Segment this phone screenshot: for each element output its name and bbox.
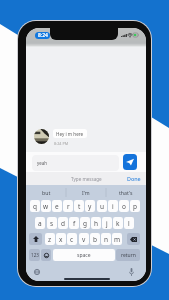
button[interactable]: Dictate xyxy=(129,268,134,276)
staticText: u xyxy=(100,202,105,211)
button[interactable]: p xyxy=(130,200,140,212)
button[interactable]: Hey i m here xyxy=(53,129,87,138)
button[interactable]: d xyxy=(58,217,68,229)
staticText: h xyxy=(94,219,99,228)
button[interactable]: k xyxy=(113,217,123,229)
staticText: j xyxy=(106,219,108,228)
button[interactable]: Change keyboard xyxy=(34,269,40,275)
button[interactable]: w xyxy=(41,200,51,212)
button[interactable]: q xyxy=(30,200,40,212)
button[interactable]: h xyxy=(91,217,101,229)
staticText: x xyxy=(59,235,63,244)
button[interactable]: e xyxy=(52,200,62,212)
staticText: f xyxy=(73,219,76,228)
staticText: Hey i m here xyxy=(56,131,84,137)
button[interactable]: f xyxy=(69,217,79,229)
button[interactable]: r xyxy=(63,200,73,212)
staticText: k xyxy=(116,219,120,228)
button[interactable]: Contact avatar xyxy=(34,129,49,144)
button[interactable]: b xyxy=(90,233,100,245)
staticText: w xyxy=(43,202,49,211)
button[interactable]: I'm xyxy=(66,186,106,198)
staticText: Done xyxy=(127,175,141,182)
button[interactable]: space xyxy=(53,249,115,261)
button[interactable]: 123 xyxy=(29,249,40,261)
staticText: I'm xyxy=(82,189,90,196)
staticText: 8:24 xyxy=(38,32,48,39)
button[interactable]: c xyxy=(67,233,77,245)
staticText: l xyxy=(128,219,130,228)
staticText: q xyxy=(33,202,37,211)
button[interactable]: but xyxy=(26,186,66,198)
button[interactable]: v xyxy=(79,233,89,245)
staticText: yeah xyxy=(37,160,47,166)
staticText: a xyxy=(38,219,42,228)
button[interactable]: l xyxy=(124,217,134,229)
staticText: c xyxy=(70,235,74,244)
staticText: n xyxy=(104,235,109,244)
button[interactable]: Done xyxy=(124,173,146,184)
staticText: y xyxy=(88,202,92,211)
staticText: that's xyxy=(119,189,133,196)
button[interactable]: x xyxy=(56,233,66,245)
button[interactable]: Emoji xyxy=(41,249,51,261)
staticText: r xyxy=(67,202,70,211)
button[interactable]: z xyxy=(45,233,55,245)
staticText: 8:24 PM xyxy=(54,141,69,146)
staticText: Type message xyxy=(71,176,102,182)
button[interactable]: u xyxy=(97,200,107,212)
staticText: s xyxy=(50,219,54,228)
button[interactable]: yeah xyxy=(32,155,119,171)
button[interactable]: a xyxy=(35,217,45,229)
staticText: i xyxy=(112,202,114,211)
button[interactable]: return xyxy=(116,249,140,261)
button[interactable]: o xyxy=(119,200,129,212)
button[interactable]: that's xyxy=(106,186,146,198)
staticText: g xyxy=(83,219,87,228)
button[interactable]: Shift xyxy=(29,233,42,245)
button[interactable]: n xyxy=(101,233,111,245)
button[interactable]: y xyxy=(85,200,95,212)
button[interactable]: s xyxy=(47,217,57,229)
staticText: m xyxy=(114,235,121,244)
staticText: o xyxy=(122,202,126,211)
button[interactable]: j xyxy=(102,217,112,229)
staticText: d xyxy=(61,219,65,228)
button[interactable]: Send xyxy=(123,154,137,170)
staticText: b xyxy=(93,235,97,244)
button[interactable]: g xyxy=(80,217,90,229)
staticText: v xyxy=(82,235,86,244)
staticText: 123 xyxy=(31,252,39,258)
button[interactable]: t xyxy=(74,200,84,212)
staticText: but xyxy=(42,189,51,196)
button[interactable]: Backspace xyxy=(127,233,140,245)
staticText: z xyxy=(48,235,52,244)
staticText: t xyxy=(78,202,81,211)
button[interactable]: m xyxy=(112,233,122,245)
staticText: space xyxy=(77,252,91,259)
staticText: return xyxy=(121,252,136,259)
button[interactable]: i xyxy=(108,200,118,212)
staticText: p xyxy=(133,202,137,211)
staticText: e xyxy=(55,202,59,211)
